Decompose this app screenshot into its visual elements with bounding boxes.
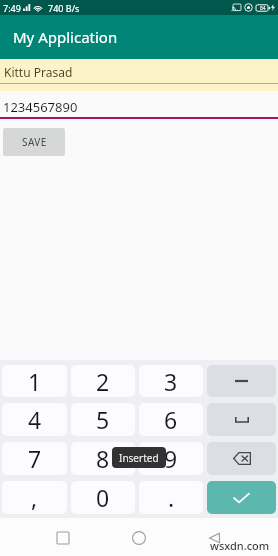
staticText: 3 xyxy=(164,366,178,397)
staticText: Inserted xyxy=(119,451,159,465)
staticText: 1 xyxy=(28,366,42,397)
staticText: 9 xyxy=(164,443,178,474)
button[interactable]: 3 xyxy=(139,365,203,397)
staticText: 1234567890 xyxy=(3,98,78,116)
button[interactable]: Home xyxy=(123,522,155,554)
staticText: 740 B/s xyxy=(48,2,80,14)
button[interactable]: 4 xyxy=(2,403,67,436)
staticText: 5 xyxy=(96,404,110,435)
button[interactable]: 7 xyxy=(2,442,67,475)
button[interactable]: 0 xyxy=(71,481,135,514)
button[interactable]: 2 xyxy=(71,365,135,397)
button[interactable]: Done xyxy=(207,481,276,514)
staticText: 2 xyxy=(96,366,110,397)
staticText: . xyxy=(168,482,175,513)
staticText: 8 xyxy=(96,443,110,474)
staticText: 6 xyxy=(164,404,178,435)
staticText: 4 xyxy=(28,404,42,435)
button[interactable]: 1 xyxy=(2,365,67,397)
button[interactable]: Space xyxy=(207,403,276,436)
button[interactable]: . xyxy=(139,481,203,514)
button[interactable]: 6 xyxy=(139,403,203,436)
staticText: , xyxy=(31,482,38,513)
button[interactable]: Back xyxy=(198,522,230,554)
button[interactable]: Delete xyxy=(207,442,276,475)
button[interactable]: SAVE xyxy=(3,128,65,156)
button[interactable]: Recents xyxy=(47,522,79,554)
button[interactable]: 5 xyxy=(71,403,135,436)
staticText: My Application xyxy=(13,27,118,47)
staticText: Kittu Prasad xyxy=(4,64,73,80)
button[interactable]: 1234567890 xyxy=(0,96,278,122)
button[interactable]: Kittu Prasad xyxy=(0,59,278,91)
staticText: 0 xyxy=(96,482,110,513)
staticText: SAVE xyxy=(22,135,47,149)
staticText: wsxdn.com xyxy=(210,538,270,553)
button[interactable]: , xyxy=(2,481,67,514)
button[interactable]: 8 xyxy=(71,442,135,475)
button[interactable]: 9 xyxy=(139,442,203,475)
staticText: 64 xyxy=(260,5,266,12)
staticText: 7:49 xyxy=(3,2,21,14)
button[interactable]: Minus xyxy=(207,365,276,397)
staticText: 7 xyxy=(28,443,42,474)
